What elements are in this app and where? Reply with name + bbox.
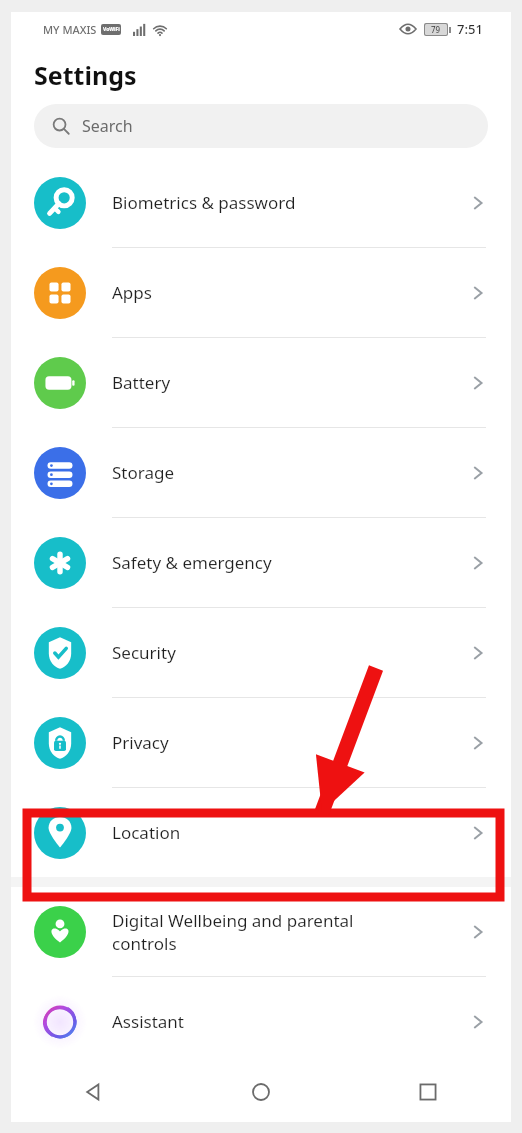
staticText: Storage [112,461,462,484]
button[interactable]: Search [34,104,488,148]
staticText: Battery [112,371,462,394]
staticText: Settings [34,58,137,92]
staticText: Biometrics & password [112,191,462,214]
button[interactable]: Biometrics & password [11,158,511,248]
button[interactable]: Battery [11,338,511,428]
staticText: Digital Wellbeing and parental controls [112,909,462,955]
button[interactable]: Location [11,788,511,877]
button[interactable]: Apps [11,248,511,338]
staticText: 79 [431,24,441,35]
staticText: 7:51 [457,20,483,38]
staticText: Location [112,821,462,844]
button[interactable]: Safety & emergency [11,518,511,608]
staticText: VoWiFi [103,26,120,33]
button[interactable]: Security [11,608,511,698]
button[interactable]: Privacy [11,698,511,788]
staticText: Security [112,641,462,664]
staticText: Assistant [112,1010,462,1033]
button[interactable]: Home [177,1062,344,1122]
button[interactable]: Digital Wellbeing and parental controls [11,887,511,977]
staticText: Safety & emergency [112,551,462,574]
staticText: Privacy [112,731,462,754]
button[interactable]: Storage [11,428,511,518]
button[interactable]: Back [11,1062,177,1122]
staticText: Apps [112,281,462,304]
button[interactable]: Recents [344,1062,511,1122]
button[interactable]: Assistant [11,977,511,1066]
staticText: Search [82,115,133,137]
staticText: MY MAXIS [43,22,97,37]
